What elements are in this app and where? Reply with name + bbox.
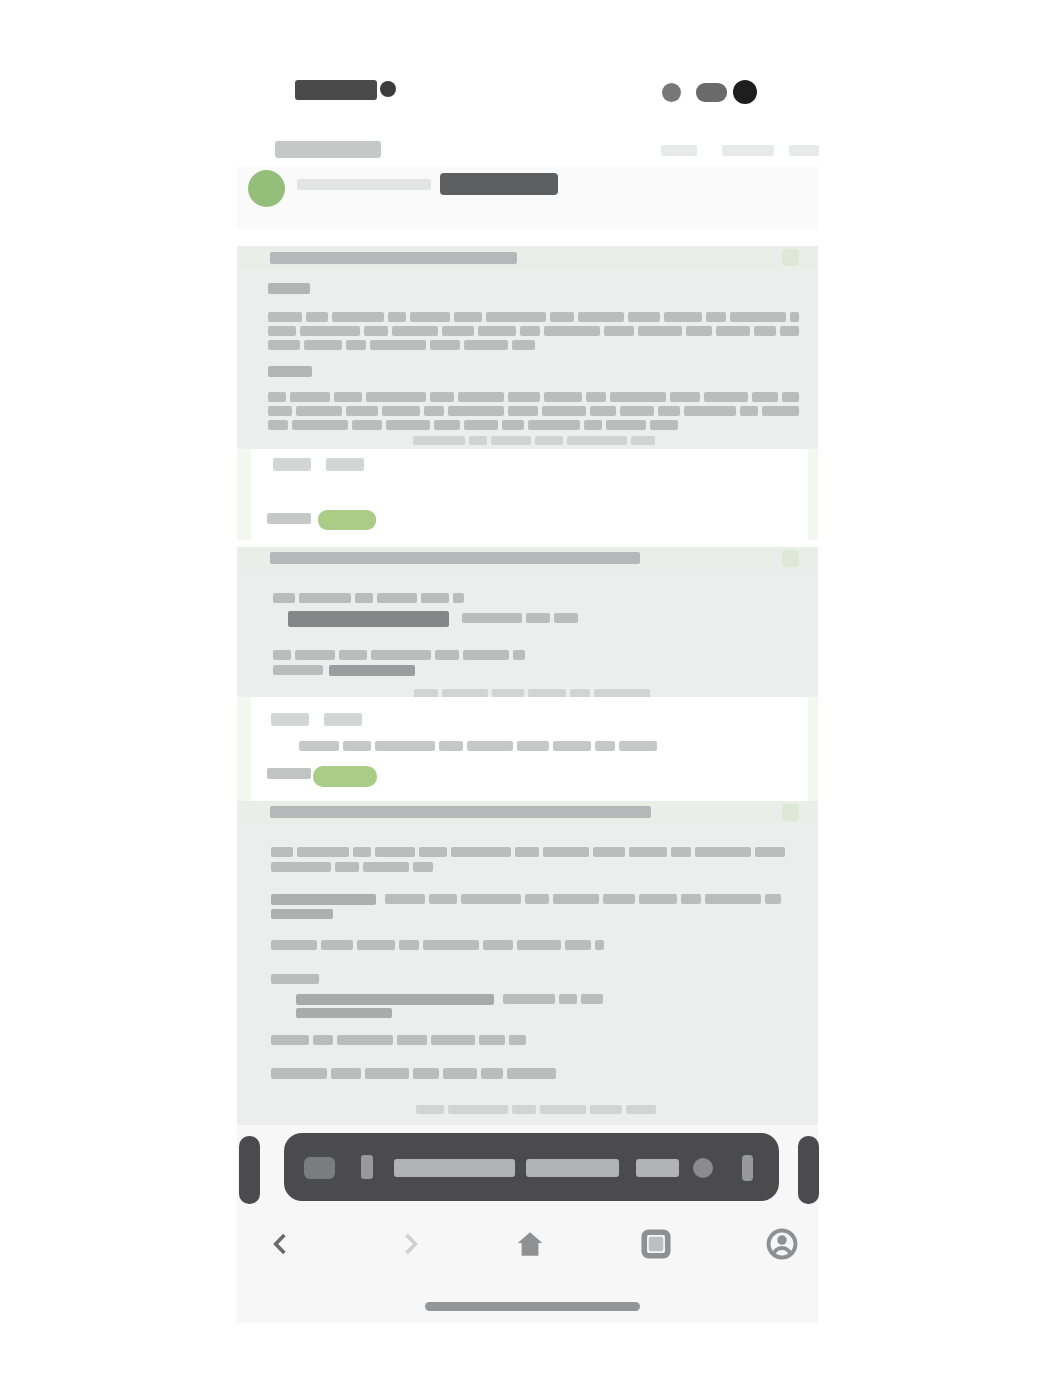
button[interactable]	[237, 547, 818, 570]
button[interactable]: Home	[508, 1222, 552, 1266]
button[interactable]: Tabs	[634, 1222, 678, 1266]
button[interactable]: Next tab	[798, 1136, 819, 1204]
button[interactable]	[284, 1133, 779, 1201]
button[interactable]: Previous tab	[239, 1136, 260, 1204]
button[interactable]: Forward	[388, 1222, 432, 1266]
button[interactable]	[237, 246, 818, 270]
button[interactable]: Profile	[760, 1222, 804, 1266]
button[interactable]	[237, 801, 818, 824]
button[interactable]: Back	[259, 1222, 303, 1266]
